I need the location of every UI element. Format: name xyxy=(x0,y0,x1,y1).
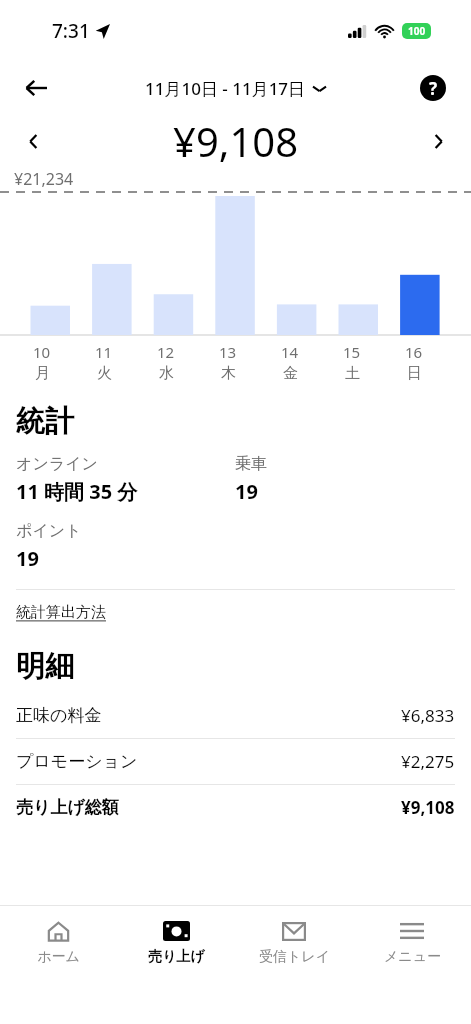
staticText: 15 xyxy=(343,342,361,362)
button[interactable]: 売り上げ xyxy=(117,906,235,1024)
staticText: ¥9,108 xyxy=(401,796,455,819)
staticText: 統計 xyxy=(16,403,74,440)
staticText: ¥2,275 xyxy=(401,750,455,773)
staticText: 水 xyxy=(159,364,174,383)
button[interactable]: ホーム xyxy=(0,906,117,1024)
button[interactable]: Previous week xyxy=(14,122,52,160)
staticText: 12 xyxy=(157,342,175,362)
staticText: 14 xyxy=(281,342,299,362)
staticText: 11月10日 - 11月17日 xyxy=(145,77,306,100)
staticText: 100 xyxy=(408,24,426,38)
staticText: ¥9,108 xyxy=(173,114,299,168)
staticText: 乗車 xyxy=(235,454,267,474)
staticText: ホーム xyxy=(37,948,80,966)
button[interactable]: Back xyxy=(14,66,58,110)
staticText: 日 xyxy=(407,364,422,383)
button[interactable]: 統計算出方法 xyxy=(16,603,106,622)
staticText: 金 xyxy=(283,364,298,383)
button[interactable]: Help xyxy=(413,68,453,108)
button[interactable]: 正味の料金 xyxy=(16,693,455,738)
staticText: 火 xyxy=(97,364,112,383)
staticText: ? xyxy=(429,77,438,100)
staticText: 10 xyxy=(33,342,51,362)
button[interactable]: メニュー xyxy=(353,906,471,1024)
button[interactable]: プロモーション xyxy=(16,739,455,784)
button[interactable]: 受信トレイ xyxy=(235,906,353,1024)
staticText: 木 xyxy=(221,364,236,383)
staticText: 16 xyxy=(405,342,423,362)
button[interactable]: 11月10日 - 11月17日 xyxy=(145,77,326,100)
staticText: 11 時間 35 分 xyxy=(16,478,138,505)
button[interactable]: 売り上げ総額 xyxy=(16,785,455,830)
staticText: 7:31 xyxy=(52,18,90,44)
staticText: 11 xyxy=(95,342,113,362)
button[interactable]: Next week xyxy=(419,122,457,160)
staticText: ¥6,833 xyxy=(401,704,455,727)
staticText: 土 xyxy=(345,364,360,383)
staticText: プロモーション xyxy=(16,751,401,772)
staticText: 売り上げ xyxy=(148,948,205,966)
staticText: オンライン xyxy=(16,454,98,474)
staticText: メニュー xyxy=(384,948,441,966)
staticText: 受信トレイ xyxy=(259,948,330,966)
staticText: 月 xyxy=(35,364,50,383)
staticText: 明細 xyxy=(16,648,74,685)
staticText: ¥21,234 xyxy=(14,168,74,190)
staticText: 19 xyxy=(235,478,258,505)
staticText: 売り上げ総額 xyxy=(16,797,401,818)
staticText: 統計算出方法 xyxy=(16,603,106,622)
staticText: 13 xyxy=(219,342,237,362)
staticText: 19 xyxy=(16,545,39,572)
staticText: 正味の料金 xyxy=(16,705,401,726)
staticText: ポイント xyxy=(16,521,82,541)
